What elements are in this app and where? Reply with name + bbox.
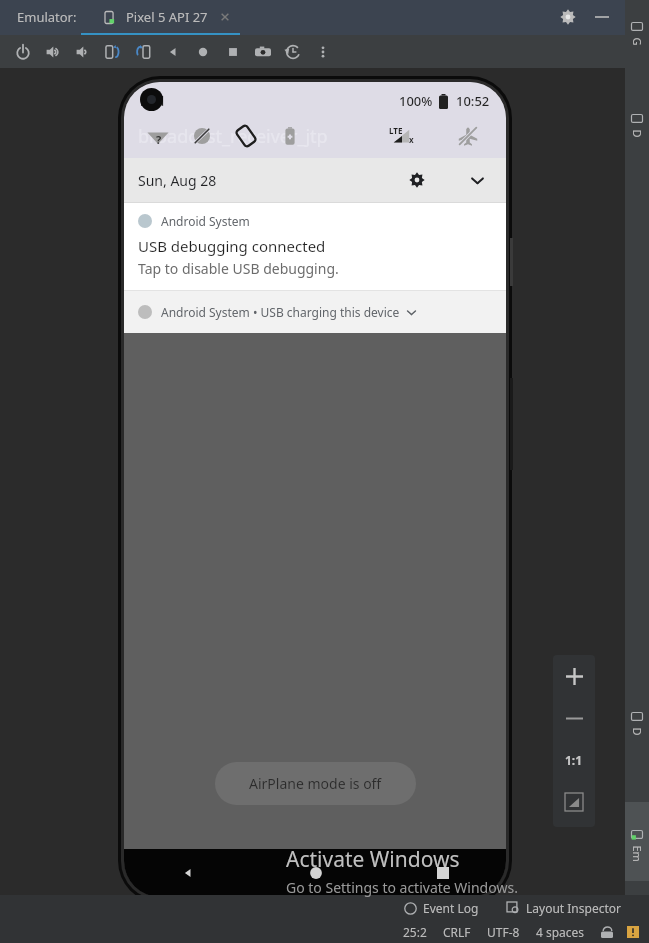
staticText: broadcast_receiver_jtp (138, 124, 328, 149)
button[interactable]: Zoom out (553, 697, 595, 739)
staticText: Pixel 5 API 27 (126, 8, 208, 26)
button[interactable]: Recent apps (379, 849, 506, 897)
staticText: Emulator (629, 845, 644, 853)
button[interactable]: Back (158, 37, 188, 67)
button[interactable]: Actual size (553, 739, 595, 781)
staticText: Event Log (423, 900, 479, 916)
button[interactable]: Auto-rotate (224, 116, 268, 156)
button[interactable]: Back (124, 849, 252, 897)
staticText: 100% (399, 92, 433, 110)
staticText: 1:1 (565, 752, 583, 768)
staticText: Go to Settings to activate Windows. (286, 878, 518, 897)
staticText: AirPlane mode is off (249, 774, 382, 793)
button[interactable]: Settings (551, 0, 585, 33)
button[interactable]: More (308, 37, 338, 67)
staticText: Sun, Aug 28 (138, 171, 217, 190)
button[interactable]: Rotate right (128, 37, 158, 67)
button[interactable]: Wi-Fi (136, 116, 180, 156)
staticText: 25:2 (403, 924, 427, 940)
staticText: Device File Explorer (629, 727, 644, 735)
staticText: Device Manager (629, 129, 644, 137)
staticText: UTF-8 (487, 924, 520, 940)
staticText: 4 spaces (536, 924, 585, 940)
button[interactable]: AirPlane mode is off (215, 762, 416, 805)
button[interactable]: Notifications (625, 924, 641, 940)
button[interactable]: Event Log (398, 900, 485, 916)
staticText: LTE (389, 125, 403, 136)
button[interactable]: Zoom in (553, 655, 595, 697)
staticText: Emulator: (17, 8, 77, 26)
staticText: Activate Windows (286, 845, 460, 874)
button[interactable]: Expand (462, 165, 492, 195)
button[interactable]: Home (252, 849, 379, 897)
button[interactable]: Volume up (38, 37, 68, 67)
button[interactable]: Do not disturb (180, 116, 224, 156)
staticText: x (409, 134, 414, 145)
button[interactable]: Fit to window (553, 781, 595, 823)
button[interactable]: Lock (599, 924, 615, 940)
button[interactable]: Power (8, 37, 38, 67)
button[interactable]: Minimize (585, 0, 619, 33)
staticText: 10:52 (456, 92, 490, 110)
staticText: Android System • USB charging this devic… (161, 304, 400, 320)
button[interactable]: Emulator (625, 802, 649, 881)
button[interactable]: Airplane mode (446, 116, 490, 156)
button[interactable]: History (278, 37, 308, 67)
staticText: Layout Inspector (526, 900, 621, 916)
button[interactable]: Mobile data (380, 116, 424, 156)
button[interactable]: Home (188, 37, 218, 67)
staticText: USB debugging connected (138, 236, 326, 256)
button[interactable]: Rotate left (98, 37, 128, 67)
button[interactable]: Android System (124, 203, 506, 290)
button[interactable]: Layout Inspector (501, 900, 627, 916)
button[interactable]: Close tab (218, 10, 232, 24)
button[interactable]: Overview (218, 37, 248, 67)
button[interactable]: Android System • USB charging this devic… (124, 291, 506, 333)
button[interactable]: Screenshot (248, 37, 278, 67)
staticText: ? (156, 132, 162, 147)
button[interactable]: Pixel 5 API 27 (99, 8, 238, 26)
staticText: Android System (161, 213, 250, 229)
staticText: CRLF (443, 924, 471, 940)
staticText: Gradle (629, 37, 644, 45)
button[interactable]: Device File Explorer (625, 644, 649, 802)
staticText: Tap to disable USB debugging. (138, 259, 339, 278)
button[interactable]: Settings (402, 165, 432, 195)
button[interactable]: Device Manager (625, 66, 649, 184)
staticText: roid (140, 92, 165, 110)
button[interactable]: Gradle (625, 0, 649, 66)
button[interactable]: Battery saver (268, 116, 312, 156)
button[interactable]: Volume down (68, 37, 98, 67)
